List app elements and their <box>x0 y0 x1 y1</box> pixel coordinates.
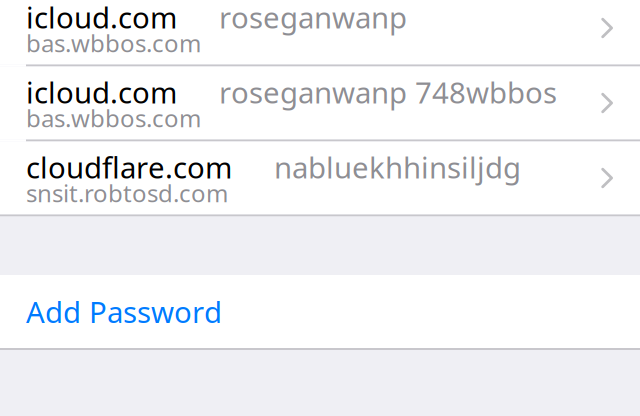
button[interactable]: icloud.com <box>0 66 640 139</box>
staticText: icloud.com <box>26 72 177 111</box>
button[interactable]: icloud.com <box>0 0 640 64</box>
staticText: roseganwanp 748wbbos <box>219 72 557 111</box>
staticText: nabluekhhinsiljdg <box>274 147 521 186</box>
staticText: snsit.robtosd.com <box>26 177 228 209</box>
staticText: bas.wbbos.com <box>26 102 201 134</box>
staticText: cloudflare.com <box>26 147 232 186</box>
staticText: bas.wbbos.com <box>26 27 201 59</box>
button[interactable]: cloudflare.com <box>0 141 640 214</box>
staticText: Add Password <box>26 292 222 331</box>
staticText: icloud.com <box>26 0 177 36</box>
button[interactable]: Add Password <box>0 275 640 348</box>
staticText: roseganwanp <box>219 0 407 36</box>
